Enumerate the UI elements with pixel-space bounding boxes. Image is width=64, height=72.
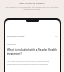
staticText: All — [55, 35, 58, 38]
staticText: Your plan covers an initial consult, per… — [7, 60, 58, 66]
staticText: What is included with a Reader Health tr… — [7, 48, 58, 55]
staticText: Frequently asked — [7, 35, 25, 38]
staticText: Easy Access to Support — [19, 2, 45, 5]
button[interactable]: Frequently asked — [7, 35, 58, 38]
staticText: Get answers to your questions and connec… — [3, 6, 61, 10]
staticText: Treatment — [7, 43, 17, 46]
